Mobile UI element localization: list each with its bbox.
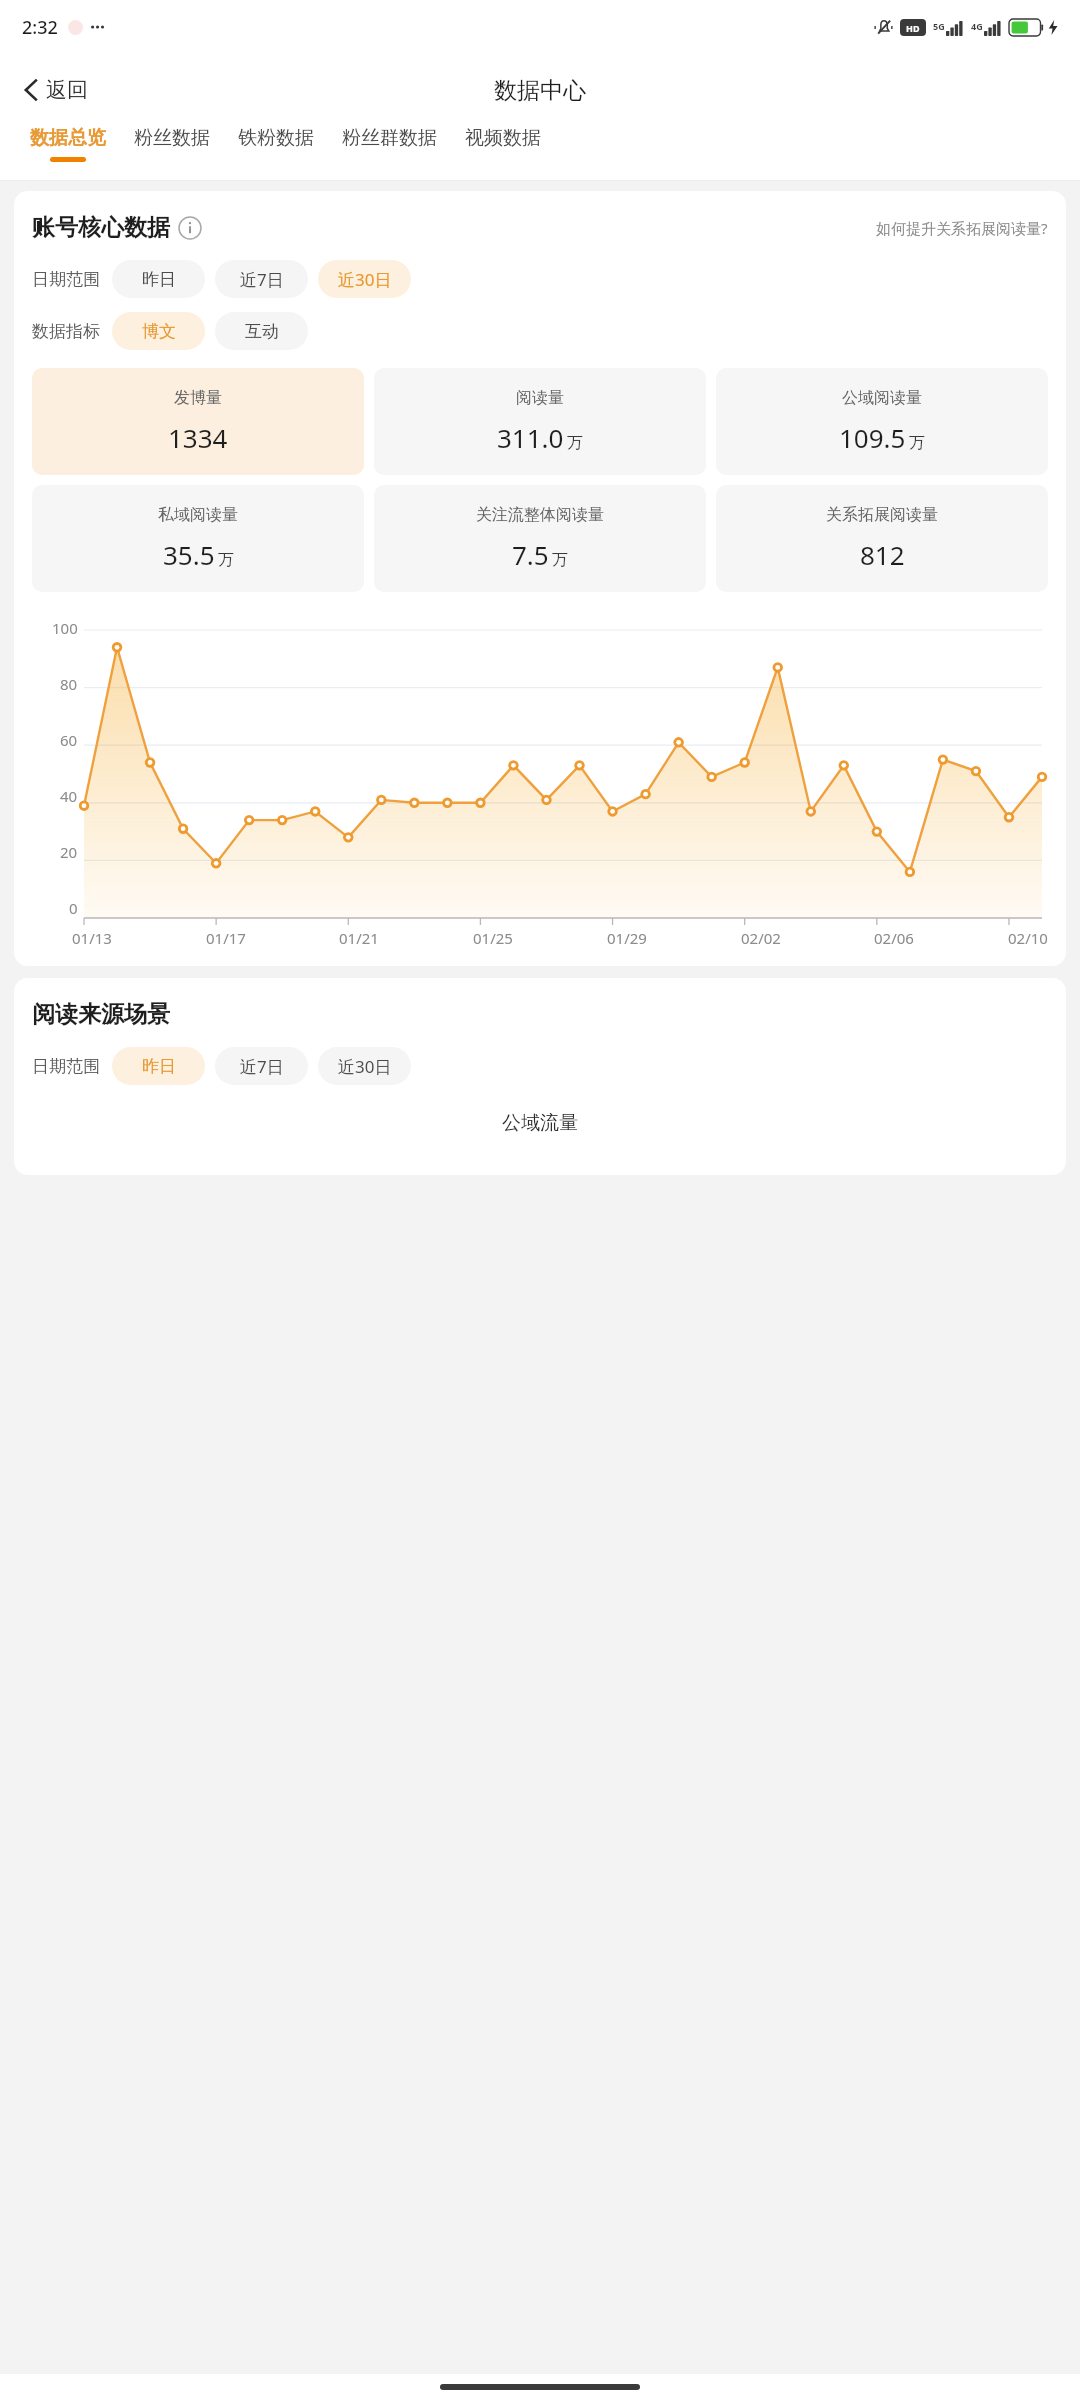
staticText: 万 [552,550,568,570]
staticText: 私域阅读量 [158,505,238,525]
staticText: 返回 [46,77,88,103]
staticText: 昨日 [142,1056,176,1077]
staticText: 01/25 [473,928,513,948]
staticText: 万 [567,433,583,453]
button[interactable]: 返回 [14,71,96,109]
staticText: 日期范围 [32,269,100,290]
button[interactable]: 数据总览 [16,126,120,162]
staticText: 60 [60,730,78,750]
button[interactable]: 关注流整体阅读量 [374,485,706,592]
staticText: 311.0 [497,420,564,455]
staticText: 01/13 [72,928,112,948]
staticText: 近7日 [240,1055,284,1078]
staticText: 40 [60,786,78,806]
staticText: 2:32 [22,15,58,40]
staticText: 01/21 [339,928,379,948]
staticText: 0 [69,898,78,918]
staticText: 阅读量 [516,388,564,408]
staticText: 近30日 [338,1055,392,1078]
button[interactable]: 如何提升关系拓展阅读量? [876,218,1048,238]
staticText: 数据总览 [30,126,106,150]
button[interactable]: 私域阅读量 [32,485,364,592]
button[interactable]: 近30日 [318,260,411,298]
button[interactable]: 说明 [178,216,202,240]
staticText: 粉丝数据 [134,126,210,150]
staticText: 万 [909,433,925,453]
staticText: 粉丝群数据 [342,126,437,150]
staticText: 7.5 [512,537,549,572]
staticText: 账号核心数据 [32,213,170,242]
staticText: 互动 [245,321,279,342]
button[interactable]: 公域阅读量 [716,368,1048,475]
staticText: 昨日 [142,269,176,290]
staticText: 数据中心 [494,76,586,105]
button[interactable]: 阅读量 [374,368,706,475]
staticText: HD [906,22,920,34]
button[interactable]: 粉丝数据 [120,126,224,157]
staticText: 关系拓展阅读量 [826,505,938,525]
button[interactable]: 博文 [112,312,205,350]
staticText: 5G [933,20,945,32]
button[interactable]: 视频数据 [451,126,555,157]
staticText: 02/10 [1008,928,1048,948]
staticText: 1334 [168,420,228,455]
staticText: 阅读来源场景 [32,1000,170,1029]
button[interactable]: 近7日 [215,1047,308,1085]
staticText: 01/17 [206,928,246,948]
staticText: 发博量 [174,388,222,408]
staticText: 公域流量 [502,1111,578,1135]
staticText: 109.5 [839,420,906,455]
staticText: 铁粉数据 [238,126,314,150]
staticText: 01/29 [607,928,647,948]
staticText: 02/06 [874,928,914,948]
staticText: 35.5 [163,537,215,572]
button[interactable]: 关系拓展阅读量 [716,485,1048,592]
staticText: 公域阅读量 [842,388,922,408]
button[interactable]: 铁粉数据 [224,126,328,157]
staticText: 812 [860,537,905,572]
button[interactable]: 互动 [215,312,308,350]
staticText: 博文 [142,321,176,342]
button[interactable]: 近7日 [215,260,308,298]
staticText: 日期范围 [32,1056,100,1077]
staticText: 视频数据 [465,126,541,150]
staticText: 近30日 [338,268,392,291]
staticText: 如何提升关系拓展阅读量? [876,218,1048,238]
staticText: 万 [218,550,234,570]
staticText: 80 [60,674,78,694]
staticText: 02/02 [741,928,781,948]
staticText: 4G [971,20,983,32]
button[interactable]: 粉丝群数据 [328,126,451,157]
staticText: 数据指标 [32,321,100,342]
button[interactable]: 昨日 [112,1047,205,1085]
button[interactable]: 近30日 [318,1047,411,1085]
button[interactable]: 发博量 [32,368,364,475]
staticText: 20 [60,842,78,862]
button[interactable]: 昨日 [112,260,205,298]
staticText: 近7日 [240,268,284,291]
staticText: 100 [52,618,78,638]
staticText: 关注流整体阅读量 [476,505,604,525]
